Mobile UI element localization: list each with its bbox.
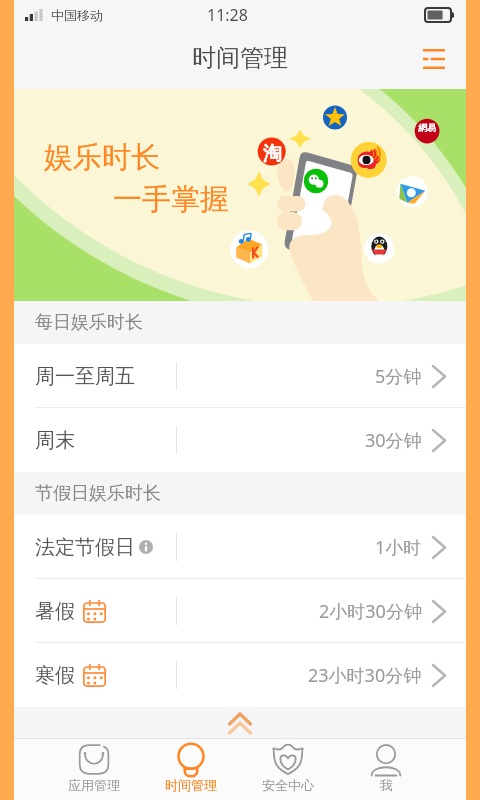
staticText: 中国移动: [51, 7, 103, 23]
staticText: 法定节假日: [35, 535, 135, 560]
button[interactable]: 应用管理: [45, 739, 142, 800]
button[interactable]: 法定节假日: [14, 515, 466, 579]
staticText: 安全中心: [262, 777, 314, 793]
staticText: 时间管理: [165, 777, 217, 793]
staticText: 节假日娱乐时长: [35, 482, 161, 505]
staticText: 1小时: [375, 535, 422, 560]
staticText: 我: [380, 777, 393, 793]
button[interactable]: Collapse: [14, 707, 466, 738]
staticText: 11:28: [207, 4, 248, 26]
staticText: 寒假: [35, 663, 75, 688]
button[interactable]: 周一至周五: [14, 344, 466, 408]
button[interactable]: 安全中心: [239, 739, 337, 800]
button[interactable]: Menu: [411, 36, 457, 82]
button[interactable]: 暑假: [14, 579, 466, 643]
staticText: 網易: [418, 122, 436, 133]
staticText: 周一至周五: [35, 364, 135, 389]
staticText: 5分钟: [375, 364, 422, 389]
staticText: 30分钟: [365, 428, 422, 453]
button[interactable]: 寒假: [14, 643, 466, 707]
staticText: 2小时30分钟: [319, 599, 422, 624]
staticText: 娱乐时长: [44, 139, 160, 176]
staticText: 每日娱乐时长: [35, 311, 143, 334]
button[interactable]: 我: [337, 739, 435, 800]
staticText: 暑假: [35, 599, 75, 624]
staticText: 时间管理: [192, 43, 288, 73]
staticText: 淘: [263, 142, 282, 166]
staticText: 一手掌握: [113, 181, 229, 218]
button[interactable]: 时间管理: [142, 739, 239, 800]
staticText: 应用管理: [68, 777, 120, 793]
staticText: 23小时30分钟: [308, 663, 422, 688]
staticText: 周末: [35, 428, 75, 453]
button[interactable]: 周末: [14, 408, 466, 472]
